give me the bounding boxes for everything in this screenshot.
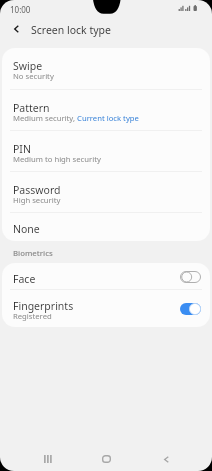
staticText: Swipe bbox=[13, 59, 43, 73]
staticText: Registered bbox=[13, 311, 52, 321]
button[interactable]: Swipe bbox=[2, 48, 210, 90]
staticText: Password bbox=[13, 183, 61, 197]
staticText: None bbox=[13, 222, 40, 236]
button[interactable]: Back bbox=[148, 449, 185, 469]
staticText: Face bbox=[13, 272, 36, 286]
button[interactable]: Password bbox=[2, 172, 210, 213]
button[interactable]: Home bbox=[88, 449, 125, 469]
staticText: High security bbox=[13, 195, 61, 205]
staticText: Biometrics bbox=[13, 248, 53, 259]
button[interactable]: Face bbox=[2, 263, 210, 290]
button[interactable]: Recent apps bbox=[29, 449, 66, 469]
staticText: PIN bbox=[13, 142, 31, 156]
button[interactable]: PIN bbox=[2, 131, 210, 172]
button[interactable]: Navigate up bbox=[4, 18, 28, 40]
button[interactable]: Fingerprints bbox=[2, 290, 210, 327]
staticText: Screen lock type bbox=[31, 23, 111, 37]
staticText: Pattern bbox=[13, 101, 50, 115]
staticText: 10:00 bbox=[10, 4, 31, 15]
staticText: No security bbox=[13, 71, 54, 81]
staticText: Fingerprints bbox=[13, 299, 74, 313]
staticText: Medium to high security bbox=[13, 154, 101, 164]
button[interactable]: None bbox=[2, 213, 210, 241]
button[interactable]: Pattern bbox=[2, 90, 210, 131]
button[interactable]: Turn off bbox=[180, 303, 201, 315]
button[interactable]: Turn on bbox=[180, 271, 201, 283]
staticText: Medium security, Current lock type bbox=[13, 113, 139, 123]
